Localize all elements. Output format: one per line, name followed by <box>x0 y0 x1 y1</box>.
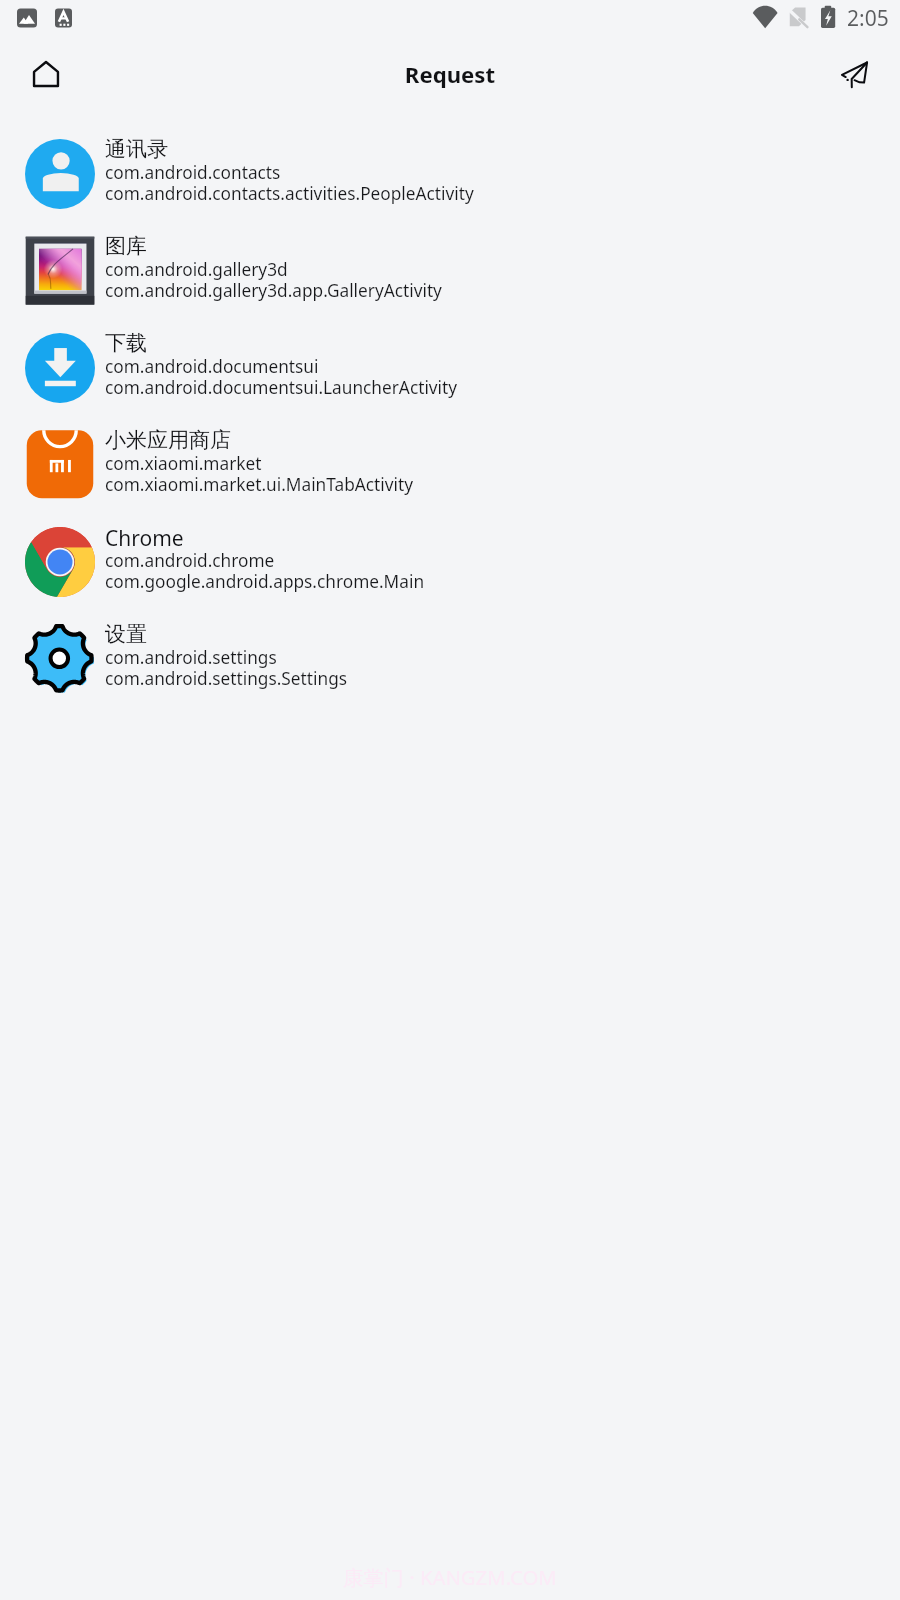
staticText: com.android.contacts <box>105 161 281 184</box>
staticText: com.android.settings.Settings <box>105 667 348 690</box>
staticText: com.google.android.apps.chrome.Main <box>105 570 425 593</box>
staticText: com.xiaomi.market.ui.MainTabActivity <box>105 473 413 496</box>
staticText: 设置 <box>105 621 147 647</box>
button[interactable]: 图库 <box>0 227 900 324</box>
staticText: com.android.settings <box>105 646 277 669</box>
staticText: com.android.chrome <box>105 549 275 572</box>
staticText: Request <box>0 59 900 89</box>
staticText: com.android.gallery3d <box>105 258 288 281</box>
staticText: Chrome <box>105 524 184 553</box>
button[interactable]: 通讯录 <box>0 130 900 227</box>
button[interactable]: 设置 <box>0 615 900 712</box>
staticText: com.android.documentsui.LauncherActivity <box>105 376 458 399</box>
button[interactable]: Send <box>829 49 879 99</box>
staticText: 图库 <box>105 233 147 259</box>
staticText: com.android.documentsui <box>105 355 319 378</box>
staticText: com.xiaomi.market <box>105 452 262 475</box>
staticText: com.android.gallery3d.app.GalleryActivit… <box>105 279 442 302</box>
staticText: 通讯录 <box>105 136 168 162</box>
staticText: com.android.contacts.activities.PeopleAc… <box>105 182 474 205</box>
staticText: 康掌门 · KANGZM.COM <box>343 1563 557 1591</box>
staticText: 小米应用商店 <box>105 427 231 453</box>
button[interactable]: 下载 <box>0 324 900 421</box>
staticText: 下载 <box>105 330 147 356</box>
button[interactable]: Chrome <box>0 518 900 615</box>
button[interactable]: Home <box>21 49 71 99</box>
button[interactable]: 小米应用商店 <box>0 421 900 518</box>
staticText: 2:05 <box>847 4 889 33</box>
